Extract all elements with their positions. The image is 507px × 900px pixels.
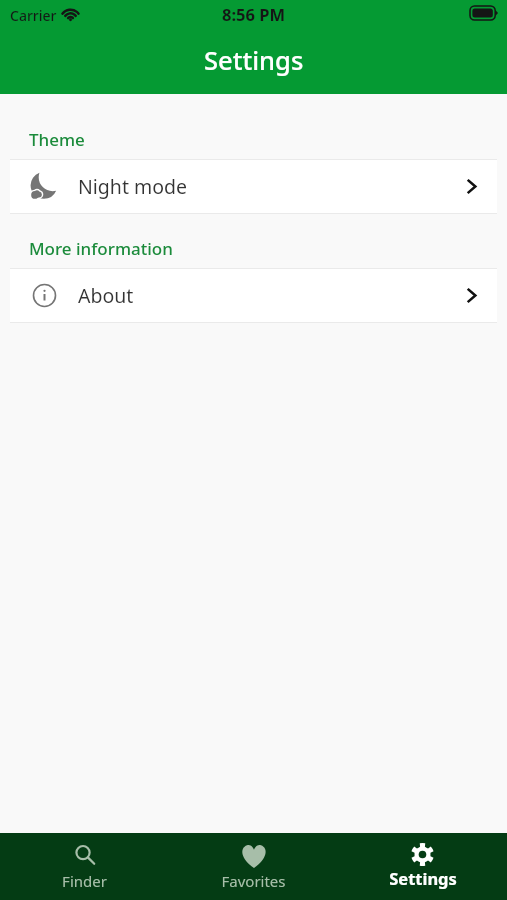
staticText: More information (29, 237, 173, 256)
staticText: Favorites (221, 871, 286, 891)
staticText: Night mode (78, 173, 188, 200)
button[interactable]: Favorites (169, 833, 338, 900)
staticText: 8:56 PM (222, 3, 286, 25)
other: Battery (470, 6, 498, 20)
button[interactable]: Settings (338, 833, 507, 900)
staticText: Finder (62, 871, 107, 891)
staticText: Settings (204, 43, 304, 78)
staticText: About (78, 282, 134, 309)
staticText: Settings (389, 867, 457, 889)
button[interactable]: About (10, 269, 497, 322)
button[interactable]: Finder (0, 833, 169, 900)
other: Wi-Fi (61, 8, 80, 21)
staticText: Theme (29, 128, 85, 147)
button[interactable]: Night mode (10, 160, 497, 213)
staticText: Carrier (10, 6, 57, 25)
